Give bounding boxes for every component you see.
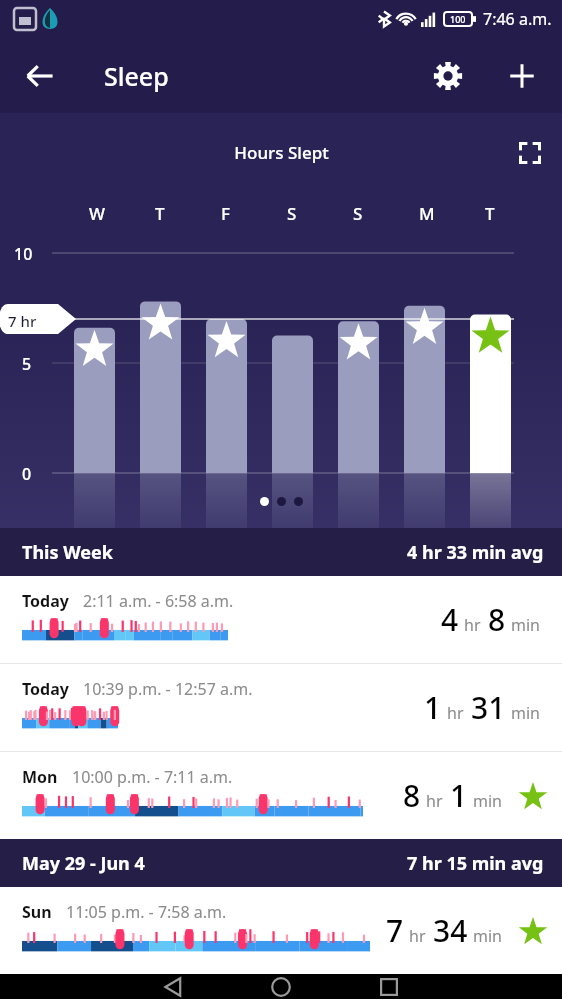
staticText: T xyxy=(485,202,495,225)
staticText: T xyxy=(155,202,165,225)
staticText: 7 xyxy=(386,910,404,951)
staticText: May 29 - Jun 4 xyxy=(22,851,145,876)
staticText: 7:46 a.m. xyxy=(483,8,552,30)
staticText: hr xyxy=(447,702,464,724)
staticText: 34 xyxy=(433,910,468,951)
button[interactable]: Back xyxy=(143,974,203,999)
staticText: 0 xyxy=(22,463,32,485)
staticText: Sleep xyxy=(104,59,169,93)
staticText: Today xyxy=(22,678,69,700)
staticText: 11:05 p.m. - 7:58 a.m. xyxy=(66,901,227,923)
staticText: min xyxy=(511,702,540,724)
staticText: 7 hr 15 min avg xyxy=(407,851,544,876)
staticText: min xyxy=(473,925,502,947)
staticText: hr xyxy=(426,790,443,812)
button[interactable]: May 29 - Jun 4 xyxy=(0,839,562,887)
staticText: 10 xyxy=(14,243,33,265)
staticText: S xyxy=(353,202,363,225)
staticText: 1 xyxy=(450,775,468,816)
staticText: This Week xyxy=(22,540,113,565)
staticText: 8 xyxy=(488,599,506,640)
button[interactable]: Home xyxy=(251,974,311,999)
button[interactable]: Fullscreen xyxy=(506,129,554,177)
staticText: Hours Slept xyxy=(234,141,329,164)
staticText: 2:11 a.m. - 6:58 a.m. xyxy=(83,590,234,612)
button[interactable]: Today xyxy=(0,664,562,751)
button[interactable]: Recent apps xyxy=(359,974,419,999)
button[interactable]: Add xyxy=(496,50,548,102)
staticText: 7 hr xyxy=(8,311,37,331)
staticText: 8 xyxy=(403,775,421,816)
staticText: 4 xyxy=(441,599,459,640)
staticText: min xyxy=(473,790,502,812)
staticText: M xyxy=(419,202,435,225)
button[interactable]: Back xyxy=(14,50,66,102)
button[interactable]: Sun xyxy=(0,887,562,974)
button[interactable]: This Week xyxy=(0,528,562,576)
staticText: W xyxy=(89,202,105,225)
button[interactable]: Today xyxy=(0,576,562,663)
staticText: S xyxy=(287,202,297,225)
staticText: 1 xyxy=(424,687,442,728)
staticText: 10:39 p.m. - 12:57 a.m. xyxy=(83,678,253,700)
button[interactable]: Mon xyxy=(0,752,562,839)
staticText: 100 xyxy=(450,13,466,25)
staticText: Today xyxy=(22,590,69,612)
staticText: min xyxy=(511,614,540,636)
staticText: 5 xyxy=(22,353,32,375)
staticText: 10:00 p.m. - 7:11 a.m. xyxy=(72,766,233,788)
button[interactable]: Settings xyxy=(422,50,474,102)
staticText: hr xyxy=(464,614,481,636)
staticText: F xyxy=(221,202,230,225)
staticText: 4 hr 33 min avg xyxy=(407,540,544,565)
staticText: 31 xyxy=(471,687,506,728)
staticText: hr xyxy=(409,925,426,947)
staticText: Mon xyxy=(22,766,58,788)
staticText: Sun xyxy=(22,901,52,923)
